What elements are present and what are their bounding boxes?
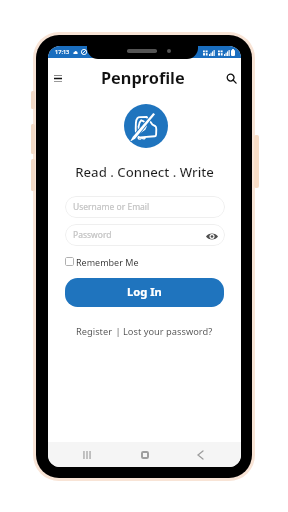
button[interactable]: Home <box>136 446 154 464</box>
button[interactable]: Register <box>76 325 113 337</box>
staticText: Password <box>73 229 112 241</box>
button[interactable]: Password <box>65 224 225 246</box>
staticText: 17:13 <box>55 48 70 56</box>
button[interactable]: Lost your password? <box>123 325 213 337</box>
button[interactable]: Back <box>191 446 209 464</box>
button[interactable]: Remember Me <box>65 255 139 268</box>
button[interactable]: Show password <box>205 228 219 242</box>
staticText: Remember Me <box>76 256 139 268</box>
button[interactable]: Menu <box>50 70 66 86</box>
staticText: Log In <box>127 284 162 299</box>
button[interactable]: Search <box>223 70 239 86</box>
button[interactable]: Log In <box>65 278 224 307</box>
staticText: Read . Connect . Write <box>75 163 214 177</box>
button[interactable]: Username or Email <box>65 196 225 218</box>
staticText: | <box>113 325 123 337</box>
staticText: Penprofile <box>101 67 185 89</box>
button[interactable]: Recent apps <box>78 446 96 464</box>
staticText: Username or Email <box>73 201 150 213</box>
